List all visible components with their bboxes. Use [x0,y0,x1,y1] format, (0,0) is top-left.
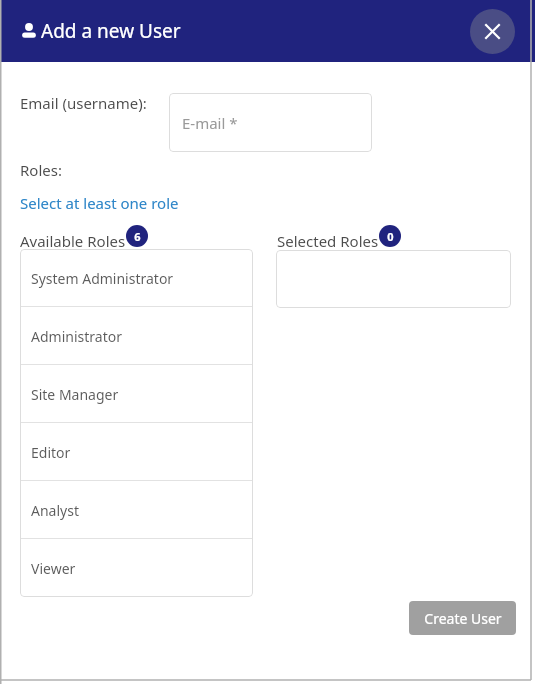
button[interactable]: System Administrator [20,249,253,307]
staticText: E-mail * [182,113,238,133]
button[interactable]: Viewer [20,539,253,597]
button[interactable]: Analyst [20,481,253,539]
button[interactable]: Select at least one role [20,193,179,213]
staticText: Select at least one role [20,193,179,213]
button[interactable]: Close [470,9,515,54]
staticText: Administrator [31,327,122,346]
staticText: Email (username): [20,93,147,113]
staticText: 0 [387,229,394,244]
staticText: Roles: [20,160,62,180]
staticText: Site Manager [31,385,119,404]
staticText: Available Roles [20,231,126,251]
button[interactable] [276,250,511,308]
button[interactable]: E-mail * [169,93,372,152]
staticText: Create User [424,609,502,628]
staticText: System Administrator [31,269,174,288]
staticText: Analyst [31,501,79,520]
button[interactable]: Administrator [20,307,253,365]
staticText: Viewer [31,559,76,578]
staticText: Add a new User [41,18,181,44]
button[interactable]: Site Manager [20,365,253,423]
staticText: Editor [31,443,71,462]
staticText: 6 [134,229,141,244]
button[interactable]: Editor [20,423,253,481]
button[interactable]: Create User [409,601,516,635]
staticText: Selected Roles [277,231,379,251]
